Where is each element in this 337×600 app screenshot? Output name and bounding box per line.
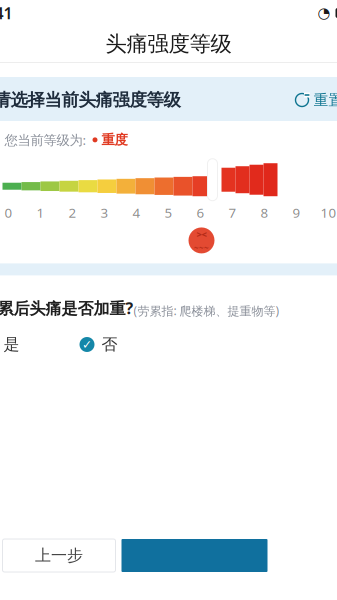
staticText: (劳累指: 爬楼梯、提重物等): [133, 303, 279, 319]
button[interactable]: 是: [0, 331, 21, 358]
staticText: 否: [101, 335, 117, 354]
staticText: 8: [260, 204, 268, 221]
button[interactable]: 重置: [294, 89, 337, 111]
staticText: 7: [228, 204, 236, 221]
staticText: 头痛强度等级: [105, 31, 231, 57]
staticText: 4: [132, 204, 140, 221]
staticText: 2: [68, 204, 76, 221]
staticText: ><: [196, 228, 206, 240]
staticText: ◔: [317, 5, 330, 21]
staticText: 是: [3, 335, 19, 354]
button[interactable]: ✓: [77, 331, 119, 358]
staticText: 请选择当前头痛强度等级: [0, 89, 180, 111]
staticText: 0: [4, 204, 12, 221]
staticText: 您当前等级为:: [4, 131, 86, 149]
button[interactable]: 上一步: [2, 539, 115, 572]
staticText: 6: [196, 204, 204, 221]
staticText: ✓: [82, 338, 92, 351]
staticText: 3: [100, 204, 108, 221]
staticText: 10: [320, 204, 336, 221]
staticText: ~~~: [194, 242, 209, 253]
staticText: 重置: [313, 91, 337, 109]
staticText: 1: [36, 204, 44, 221]
staticText: 劳累后头痛是否加重?: [0, 297, 133, 319]
staticText: 9:41: [0, 2, 12, 24]
button[interactable]: 下一步: [121, 539, 267, 572]
staticText: 重度: [101, 132, 127, 148]
staticText: 5: [164, 204, 172, 221]
staticText: 9: [292, 204, 300, 221]
staticText: 上一步: [35, 546, 83, 565]
